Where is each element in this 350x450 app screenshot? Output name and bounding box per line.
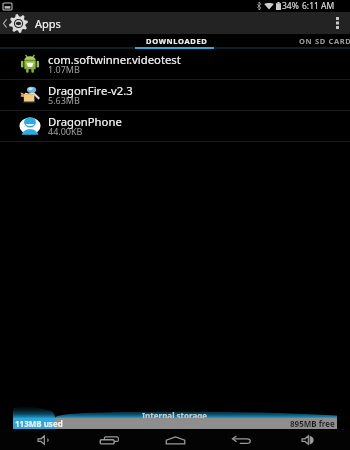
- button[interactable]: DragonFire-v2.3: [0, 80, 350, 110]
- button[interactable]: Back: [208, 429, 274, 450]
- staticText: 1.07MB: [48, 63, 80, 75]
- staticText: 5.63MB: [48, 94, 80, 106]
- staticText: com.softwinner.videotest: [48, 52, 181, 67]
- staticText: 6:11 AM: [302, 0, 335, 12]
- button[interactable]: Volume up: [274, 429, 340, 450]
- staticText: DOWNLOADED: [146, 36, 208, 46]
- button[interactable]: com.softwinner.videotest: [0, 49, 350, 79]
- staticText: DragonPhone: [48, 114, 122, 129]
- button[interactable]: More options: [324, 12, 350, 34]
- staticText: 34%: [282, 0, 299, 12]
- button[interactable]: ON SD CARD: [251, 34, 350, 49]
- staticText: Internal storage: [142, 410, 208, 418]
- button[interactable]: Recent apps: [76, 429, 142, 450]
- staticText: 113MB used: [15, 418, 63, 429]
- button[interactable]: Volume down: [10, 429, 76, 450]
- button[interactable]: DOWNLOADED: [103, 34, 251, 49]
- staticText: 44.00KB: [48, 125, 83, 137]
- button[interactable]: DragonPhone: [0, 111, 350, 141]
- staticText: Apps: [35, 16, 61, 31]
- staticText: ON SD CARD: [299, 36, 350, 46]
- button[interactable]: Navigate up, Apps: [0, 12, 61, 34]
- staticText: 895MB free: [290, 418, 335, 429]
- staticText: DragonFire-v2.3: [48, 83, 133, 98]
- button[interactable]: Home: [142, 429, 208, 450]
